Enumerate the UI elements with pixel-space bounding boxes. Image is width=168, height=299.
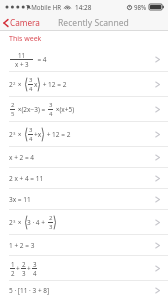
- staticText: 4: [49, 110, 53, 118]
- button[interactable]: 2: [0, 210, 168, 234]
- staticText: ×: [16, 218, 24, 227]
- staticText: 3: [49, 223, 53, 231]
- button[interactable]: 3x = 11: [0, 189, 168, 209]
- staticText: 3: [33, 260, 37, 268]
- other: Open equation: [154, 152, 161, 163]
- button[interactable]: 2: [0, 72, 168, 96]
- staticText: 11: [18, 51, 26, 59]
- button[interactable]: 11: [0, 47, 168, 71]
- staticText: 3: [22, 269, 26, 277]
- other: Open equation: [154, 194, 161, 205]
- staticText: x + 2 = 4: [9, 153, 35, 162]
- staticText: 4: [33, 269, 37, 277]
- other: Open equation: [154, 263, 161, 274]
- staticText: +: [27, 264, 31, 273]
- button[interactable]: 2: [0, 122, 168, 146]
- staticText: Camera: [10, 17, 40, 28]
- staticText: 5: [11, 110, 15, 118]
- other: Open equation: [154, 104, 161, 115]
- staticText: 3: [13, 218, 16, 224]
- staticText: 2: [13, 80, 16, 86]
- button[interactable]: 1: [0, 256, 168, 280]
- other: Open equation: [154, 79, 161, 90]
- staticText: 2: [9, 80, 13, 89]
- staticText: 2: [9, 218, 13, 227]
- button[interactable]: 5 · [11 · 3 + 8]: [0, 281, 168, 299]
- staticText: 3: [29, 76, 33, 84]
- other: Open equation: [154, 217, 161, 228]
- staticText: = 4: [34, 55, 47, 64]
- staticText: 3: [13, 130, 16, 136]
- button[interactable]: x + 2 = 4: [0, 147, 168, 167]
- staticText: 2: [11, 269, 15, 277]
- staticText: 3 · 4 +: [27, 218, 47, 227]
- staticText: This week: [9, 34, 42, 44]
- staticText: 1 + 2 = 3: [9, 241, 35, 250]
- staticText: 2: [11, 101, 15, 109]
- staticText: 3: [29, 126, 33, 134]
- staticText: 4: [29, 85, 33, 93]
- staticText: ×(x+5): [54, 105, 75, 114]
- staticText: +x: [34, 130, 42, 139]
- staticText: x + 3: [15, 60, 29, 68]
- staticText: ×: [16, 130, 24, 139]
- staticText: + 12 = 2: [41, 80, 67, 89]
- staticText: 2 x + 4 = 11: [9, 174, 44, 183]
- other: Open equation: [154, 240, 161, 251]
- other: Open equation: [154, 285, 161, 296]
- other: Open equation: [154, 173, 161, 184]
- staticText: 2: [9, 130, 13, 139]
- staticText: 2: [49, 214, 53, 222]
- staticText: 1: [11, 260, 15, 268]
- button[interactable]: 1 + 2 = 3: [0, 235, 168, 255]
- staticText: 4: [29, 135, 33, 143]
- staticText: 14:28: [75, 3, 92, 12]
- other: Open equation: [154, 129, 161, 140]
- staticText: T-Mobile HR: [26, 3, 62, 11]
- staticText: Recently Scanned: [58, 17, 129, 29]
- button[interactable]: 2 x + 4 = 11: [0, 168, 168, 188]
- other: Open equation: [154, 54, 161, 65]
- staticText: ×(2x−3) =: [16, 105, 47, 114]
- staticText: ×: [16, 80, 24, 89]
- staticText: x: [34, 80, 38, 89]
- staticText: 5 · [11 · 3 + 8]: [9, 286, 50, 295]
- staticText: 3: [49, 101, 53, 109]
- button[interactable]: 2: [0, 97, 168, 121]
- staticText: 2: [22, 260, 26, 268]
- staticText: +: [16, 264, 20, 273]
- staticText: + 12 = 2: [45, 130, 71, 139]
- staticText: 98%: [134, 3, 147, 11]
- button[interactable]: Camera: [0, 15, 44, 30]
- staticText: 3x = 11: [9, 195, 31, 204]
